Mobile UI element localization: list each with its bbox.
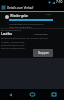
staticText: Wiedergabe xyxy=(10,14,29,18)
staticText: BENACHRICHTIGUNG xyxy=(1,29,22,32)
button[interactable]: Home xyxy=(22,89,43,100)
staticText: Telefonklingelton und xyxy=(1,44,25,47)
button[interactable]: Back xyxy=(0,89,22,100)
staticText: Wiedergabeliste wird gestartet xyxy=(9,22,44,25)
staticText: 7:10 xyxy=(56,0,63,4)
staticText: 7:10 xyxy=(46,13,51,16)
button[interactable]: Recent apps xyxy=(43,89,64,100)
staticText: Anzeige, Hintergrund, xyxy=(1,41,25,44)
staticText: 1 Stunde aktiv xyxy=(33,33,48,36)
staticText: Benachrichtigungston xyxy=(1,47,25,50)
button[interactable]: Navigate up xyxy=(0,4,7,11)
staticText: Lautlos xyxy=(1,32,13,36)
button[interactable]: Stoppen xyxy=(33,49,53,57)
staticText: Stoppen xyxy=(38,51,49,55)
staticText: Benachrichtigungen ohne Ton und ohne Vib… xyxy=(1,37,48,40)
staticText: Details zum Verlauf xyxy=(7,6,34,10)
staticText: Jetzt wird abgespielt xyxy=(9,25,32,28)
